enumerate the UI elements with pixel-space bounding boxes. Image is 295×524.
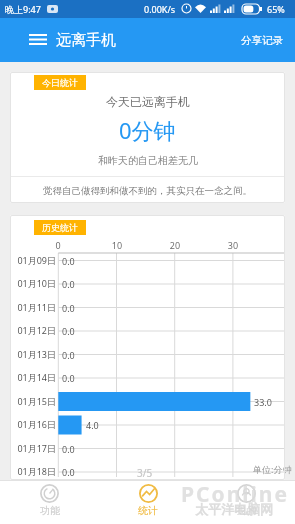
staticText: 历史统计 (42, 222, 78, 233)
staticText: 0.0 (62, 255, 75, 267)
staticText: 0.0 (62, 466, 75, 478)
button[interactable]: 分享记录 (237, 30, 287, 51)
staticText: 01月16日 (13, 418, 56, 430)
staticText: 分享记录 (241, 34, 283, 47)
staticText: 今日统计 (42, 77, 78, 88)
staticText: 0.0 (62, 443, 75, 455)
staticText: 0.0 (62, 278, 75, 290)
staticText: 0.00K/s (144, 3, 176, 15)
staticText: 3/5 (137, 466, 153, 480)
staticText: 觉得自己做得到和做不到的，其实只在一念之间。 (43, 185, 252, 197)
staticText: 远离手机 (56, 31, 116, 50)
staticText: 我的 (236, 504, 256, 517)
staticText: 0 (48, 239, 68, 251)
staticText: 单位:分钟 (253, 463, 292, 475)
button[interactable]: 我的 (197, 481, 295, 524)
staticText: PConline (181, 480, 290, 509)
staticText: 01月10日 (13, 277, 56, 289)
staticText: 10 (107, 239, 127, 251)
staticText: 01月15日 (13, 395, 56, 407)
button[interactable] (18, 20, 58, 60)
staticText: 0.0 (62, 349, 75, 361)
staticText: 33.0 (254, 396, 272, 408)
staticText: 01月12日 (13, 324, 56, 336)
staticText: 0.0 (62, 325, 75, 337)
staticText: 太平洋电脑网 (195, 501, 273, 517)
staticText: 01月09日 (13, 254, 56, 266)
staticText: 20 (165, 239, 185, 251)
button[interactable]: 统计 (99, 481, 197, 524)
staticText: 01月14日 (13, 371, 56, 383)
staticText: 功能 (40, 504, 60, 517)
staticText: 0.0 (62, 372, 75, 384)
staticText: 0.0 (62, 302, 75, 314)
staticText: 今天已远离手机 (106, 94, 190, 109)
staticText: 01月11日 (13, 301, 56, 313)
staticText: 01月17日 (13, 442, 56, 454)
staticText: 01月13日 (13, 348, 56, 360)
staticText: 和昨天的自己相差无几 (98, 154, 198, 167)
staticText: 统计 (138, 504, 158, 517)
staticText: 65% (267, 3, 285, 15)
staticText: 30 (223, 239, 243, 251)
staticText: 晚上9:47 (5, 3, 41, 15)
staticText: 01月18日 (13, 465, 56, 477)
staticText: 0分钟 (119, 115, 176, 145)
button[interactable]: 功能 (0, 481, 99, 524)
staticText: 4.0 (86, 419, 99, 431)
